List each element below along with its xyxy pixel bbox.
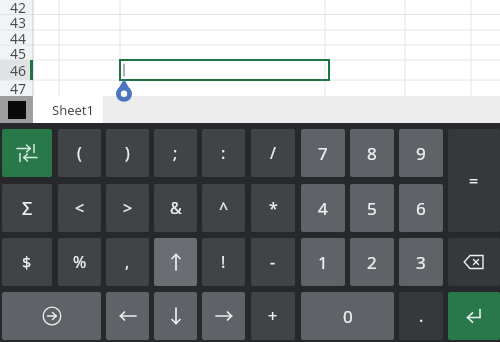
button[interactable]: 3 xyxy=(399,238,443,286)
button[interactable]: 2 xyxy=(350,238,394,286)
staticText: ) xyxy=(125,142,130,164)
button[interactable]: 9 xyxy=(399,129,443,177)
button[interactable]: > xyxy=(106,184,149,232)
button[interactable] xyxy=(448,238,500,286)
button[interactable]: ^ xyxy=(202,184,245,232)
staticText: 6 xyxy=(416,197,426,220)
staticText: 4 xyxy=(318,197,328,220)
staticText: : xyxy=(221,142,226,164)
button[interactable] xyxy=(202,292,245,340)
staticText: & xyxy=(170,197,182,219)
button[interactable]: ! xyxy=(202,238,245,286)
staticText: 47 xyxy=(10,79,27,98)
button[interactable]: Sheet1 xyxy=(33,96,103,123)
staticText: - xyxy=(270,251,276,273)
staticText: + xyxy=(268,305,278,327)
staticText: / xyxy=(270,142,276,164)
button[interactable]: Σ xyxy=(2,184,52,232)
button[interactable]: 6 xyxy=(399,184,443,232)
button[interactable]: 8 xyxy=(350,129,394,177)
button[interactable]: / xyxy=(251,129,295,177)
button[interactable] xyxy=(0,96,33,123)
staticText: Sheet1 xyxy=(52,101,94,119)
button[interactable] xyxy=(2,129,52,177)
button[interactable]: = xyxy=(448,129,500,232)
staticText: $ xyxy=(22,251,32,273)
staticText: 8 xyxy=(367,142,377,165)
button[interactable]: % xyxy=(58,238,101,286)
button[interactable]: & xyxy=(154,184,197,232)
button[interactable]: - xyxy=(251,238,295,286)
staticText: ; xyxy=(173,142,178,164)
button[interactable] xyxy=(154,292,197,340)
staticText: = xyxy=(469,170,479,192)
button[interactable]: , xyxy=(106,238,149,286)
staticText: ! xyxy=(221,251,226,273)
staticText: 5 xyxy=(367,197,377,220)
staticText: 1 xyxy=(318,251,328,274)
staticText: . xyxy=(419,305,424,327)
button[interactable]: * xyxy=(251,184,295,232)
staticText: 3 xyxy=(416,251,426,274)
button[interactable]: . xyxy=(399,292,443,340)
staticText: 7 xyxy=(318,142,328,165)
button[interactable] xyxy=(2,292,101,340)
staticText: 9 xyxy=(416,142,426,165)
staticText: , xyxy=(125,251,130,273)
button[interactable]: : xyxy=(202,129,245,177)
button[interactable]: ) xyxy=(106,129,149,177)
button[interactable]: < xyxy=(58,184,101,232)
button[interactable] xyxy=(154,238,197,286)
button[interactable]: 5 xyxy=(350,184,394,232)
button[interactable]: 1 xyxy=(301,238,345,286)
staticText: > xyxy=(123,197,133,219)
staticText: ( xyxy=(77,142,82,164)
button[interactable]: ( xyxy=(58,129,101,177)
staticText: ^ xyxy=(219,197,229,219)
staticText: 43 xyxy=(10,13,27,32)
staticText: < xyxy=(75,197,85,219)
staticText: Σ xyxy=(22,196,33,221)
button[interactable] xyxy=(106,292,149,340)
staticText: 44 xyxy=(10,29,27,48)
staticText: % xyxy=(73,251,87,273)
button[interactable]: + xyxy=(251,292,295,340)
staticText: 0 xyxy=(343,305,353,328)
button[interactable]: 4 xyxy=(301,184,345,232)
staticText: 46 xyxy=(10,61,27,80)
button[interactable]: 0 xyxy=(301,292,394,340)
staticText: * xyxy=(269,197,278,219)
staticText: 45 xyxy=(10,44,27,63)
button[interactable]: $ xyxy=(2,238,52,286)
button[interactable]: ; xyxy=(154,129,197,177)
button[interactable]: 7 xyxy=(301,129,345,177)
button[interactable] xyxy=(448,292,500,340)
staticText: 42 xyxy=(10,0,27,17)
staticText: 2 xyxy=(367,251,377,274)
